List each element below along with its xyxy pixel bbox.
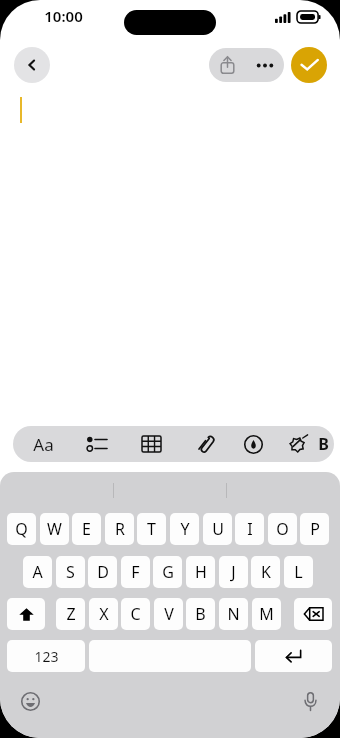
button[interactable]: Backspace	[294, 598, 332, 630]
staticText: O	[276, 518, 289, 540]
button[interactable]: I	[235, 513, 264, 545]
staticText: B	[195, 603, 206, 625]
button[interactable]: Markup	[231, 426, 275, 462]
button[interactable]: B	[186, 598, 215, 630]
staticText: W	[47, 518, 62, 540]
button[interactable]: T	[137, 513, 166, 545]
staticText: U	[212, 518, 224, 540]
staticText: L	[294, 561, 303, 583]
staticText: F	[131, 561, 140, 583]
staticText: A	[32, 561, 43, 583]
staticText: R	[115, 518, 125, 540]
button[interactable]: V	[154, 598, 183, 630]
button[interactable]: Return	[255, 640, 332, 672]
staticText: V	[164, 603, 174, 625]
staticText: Aa	[33, 433, 54, 456]
button[interactable]: Aa	[19, 426, 67, 462]
button[interactable]: Back	[14, 47, 50, 83]
staticText: 10:00	[44, 6, 83, 26]
button[interactable]: K	[251, 556, 280, 588]
button[interactable]: W	[40, 513, 69, 545]
staticText: J	[231, 561, 236, 583]
button[interactable]: A	[23, 556, 52, 588]
button[interactable]: Table	[127, 426, 175, 462]
staticText: Z	[66, 603, 76, 625]
button[interactable]: D	[88, 556, 117, 588]
staticText: N	[227, 603, 240, 625]
staticText: I	[247, 518, 253, 540]
button[interactable]: Z	[56, 598, 85, 630]
staticText: Y	[180, 518, 190, 540]
button[interactable]: More options	[246, 48, 284, 82]
staticText: T	[147, 518, 156, 540]
staticText: E	[82, 518, 91, 540]
staticText: M	[259, 603, 274, 625]
button[interactable]: J	[219, 556, 248, 588]
button[interactable]: X	[89, 598, 118, 630]
staticText: C	[130, 603, 141, 625]
staticText: X	[99, 603, 109, 625]
button[interactable]	[7, 598, 45, 630]
button[interactable]: L	[284, 556, 313, 588]
button[interactable]: F	[121, 556, 150, 588]
button[interactable]: Attach	[181, 426, 229, 462]
button[interactable]: C	[121, 598, 150, 630]
staticText: D	[97, 561, 109, 583]
button[interactable]: Writing tools	[276, 426, 320, 462]
button[interactable]: U	[203, 513, 232, 545]
button[interactable]: Y	[170, 513, 199, 545]
button[interactable]: E	[72, 513, 101, 545]
button[interactable]: N	[219, 598, 248, 630]
button[interactable]: P	[300, 513, 329, 545]
button[interactable]: Dictate	[293, 684, 327, 718]
staticText: 123	[34, 647, 59, 666]
button[interactable]: Share	[209, 48, 246, 82]
button[interactable]: Emoji	[13, 684, 47, 718]
staticText: K	[261, 561, 271, 583]
button[interactable]: O	[268, 513, 297, 545]
button[interactable]: Q	[7, 513, 36, 545]
staticText: G	[162, 561, 174, 583]
button[interactable]: G	[153, 556, 182, 588]
staticText: P	[310, 518, 320, 540]
button[interactable]: 123	[7, 640, 85, 672]
staticText: Q	[15, 518, 28, 540]
button[interactable]: Checklist	[73, 426, 121, 462]
staticText: S	[66, 561, 75, 583]
button[interactable]: M	[252, 598, 281, 630]
staticText: H	[195, 561, 207, 583]
button[interactable]: H	[186, 556, 215, 588]
staticText: B	[318, 433, 329, 455]
button[interactable]: S	[56, 556, 85, 588]
button[interactable]: R	[105, 513, 134, 545]
button[interactable]: Done	[291, 47, 327, 83]
